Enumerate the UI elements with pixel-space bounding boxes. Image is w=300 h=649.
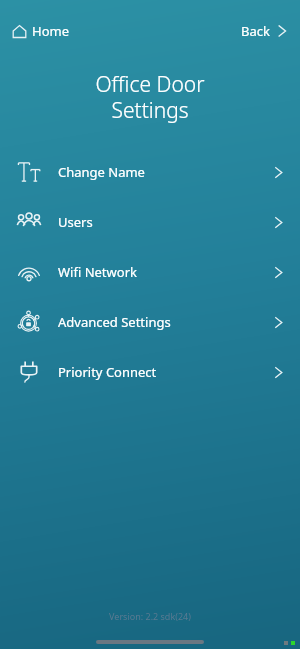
staticText: Change Name <box>58 163 145 181</box>
button[interactable]: Users <box>0 197 300 247</box>
button[interactable]: Back <box>239 16 292 46</box>
button[interactable]: Change Name <box>0 147 300 197</box>
button[interactable]: Priority Connect <box>0 347 300 397</box>
staticText: Version: 2.2 sdk(24) <box>0 610 300 622</box>
button[interactable]: Home <box>10 16 71 46</box>
button[interactable]: Wifi Network <box>0 247 300 297</box>
staticText: Users <box>58 213 93 231</box>
staticText: Back <box>241 22 270 40</box>
staticText: Home <box>32 22 69 40</box>
staticText: Wifi Network <box>58 263 137 281</box>
button[interactable]: Advanced Settings <box>0 297 300 347</box>
staticText: Priority Connect <box>58 363 157 381</box>
staticText: Advanced Settings <box>58 313 171 331</box>
staticText: Office Door Settings <box>0 70 300 125</box>
